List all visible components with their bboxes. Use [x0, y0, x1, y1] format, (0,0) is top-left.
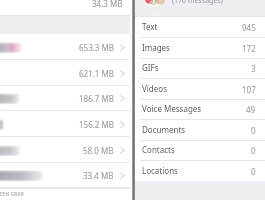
staticText: Images: [142, 42, 170, 53]
staticText: 49: [246, 104, 256, 115]
staticText: Videos: [142, 83, 167, 94]
staticText: 156.2 MB: [79, 119, 114, 130]
button[interactable]: 621.1 MB: [0, 60, 130, 86]
other: Open: [120, 172, 125, 179]
staticText: 0: [251, 166, 256, 177]
staticText: EEN GRAB: [0, 191, 24, 198]
button[interactable]: Videos: [135, 79, 265, 100]
staticText: 107: [242, 84, 256, 95]
staticText: (170 messages): [172, 0, 223, 6]
staticText: 653.3 MB: [79, 42, 114, 53]
button[interactable]: Contacts: [135, 140, 265, 161]
button[interactable]: Locations: [135, 161, 265, 182]
staticText: 3: [251, 63, 256, 74]
button[interactable]: Voice Messages: [135, 99, 265, 120]
staticText: GIFs: [142, 62, 159, 73]
button[interactable]: Text: [135, 17, 265, 38]
staticText: 186.7 MB: [79, 93, 114, 104]
button[interactable]: Images: [135, 38, 265, 59]
other: Open: [120, 95, 125, 102]
button[interactable]: 156.2 MB: [0, 111, 130, 137]
staticText: 34.3 MB: [92, 0, 123, 9]
button[interactable]: 33.4 MB: [0, 162, 130, 188]
other: Open: [120, 121, 125, 128]
other: Open: [120, 70, 125, 77]
button[interactable]: 186.7 MB: [0, 85, 130, 111]
button[interactable]: GIFs: [135, 58, 265, 79]
staticText: Contacts: [142, 144, 175, 155]
staticText: Locations: [142, 165, 178, 176]
staticText: Documents: [142, 124, 186, 135]
staticText: 945: [242, 22, 256, 33]
staticText: 172: [242, 43, 256, 54]
staticText: 33.4 MB: [83, 170, 114, 181]
staticText: 0: [251, 125, 256, 136]
staticText: 58.0 MB: [83, 145, 114, 156]
staticText: Text: [142, 21, 158, 32]
button[interactable]: 653.3 MB: [0, 34, 130, 60]
staticText: Voice Messages: [142, 103, 202, 114]
button[interactable]: Documents: [135, 120, 265, 141]
other: Open: [120, 44, 125, 51]
other: Open: [120, 147, 125, 154]
staticText: 621.1 MB: [79, 68, 114, 79]
button[interactable]: 58.0 MB: [0, 137, 130, 163]
staticText: 0: [251, 145, 256, 156]
